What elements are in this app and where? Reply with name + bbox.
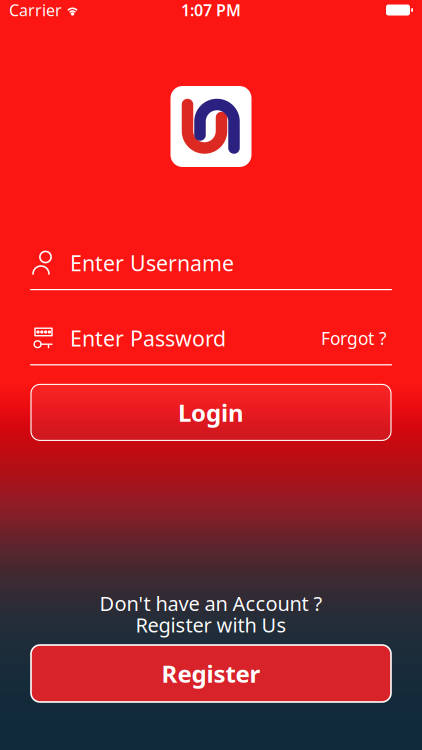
staticText: Enter Username [70,249,234,277]
button[interactable]: Login [31,384,391,440]
staticText: Enter Password [70,324,226,352]
staticText: Don't have an Account ? [99,590,322,616]
staticText: Register [161,658,260,689]
button[interactable]: Register [31,645,391,702]
staticText: 1:07 PM [181,0,241,21]
staticText: Login [178,396,244,428]
staticText: Carrier [9,0,62,21]
staticText: Register with Us [135,611,286,638]
staticText: Forgot ? [321,327,387,350]
button[interactable]: Forgot ? [316,321,392,356]
